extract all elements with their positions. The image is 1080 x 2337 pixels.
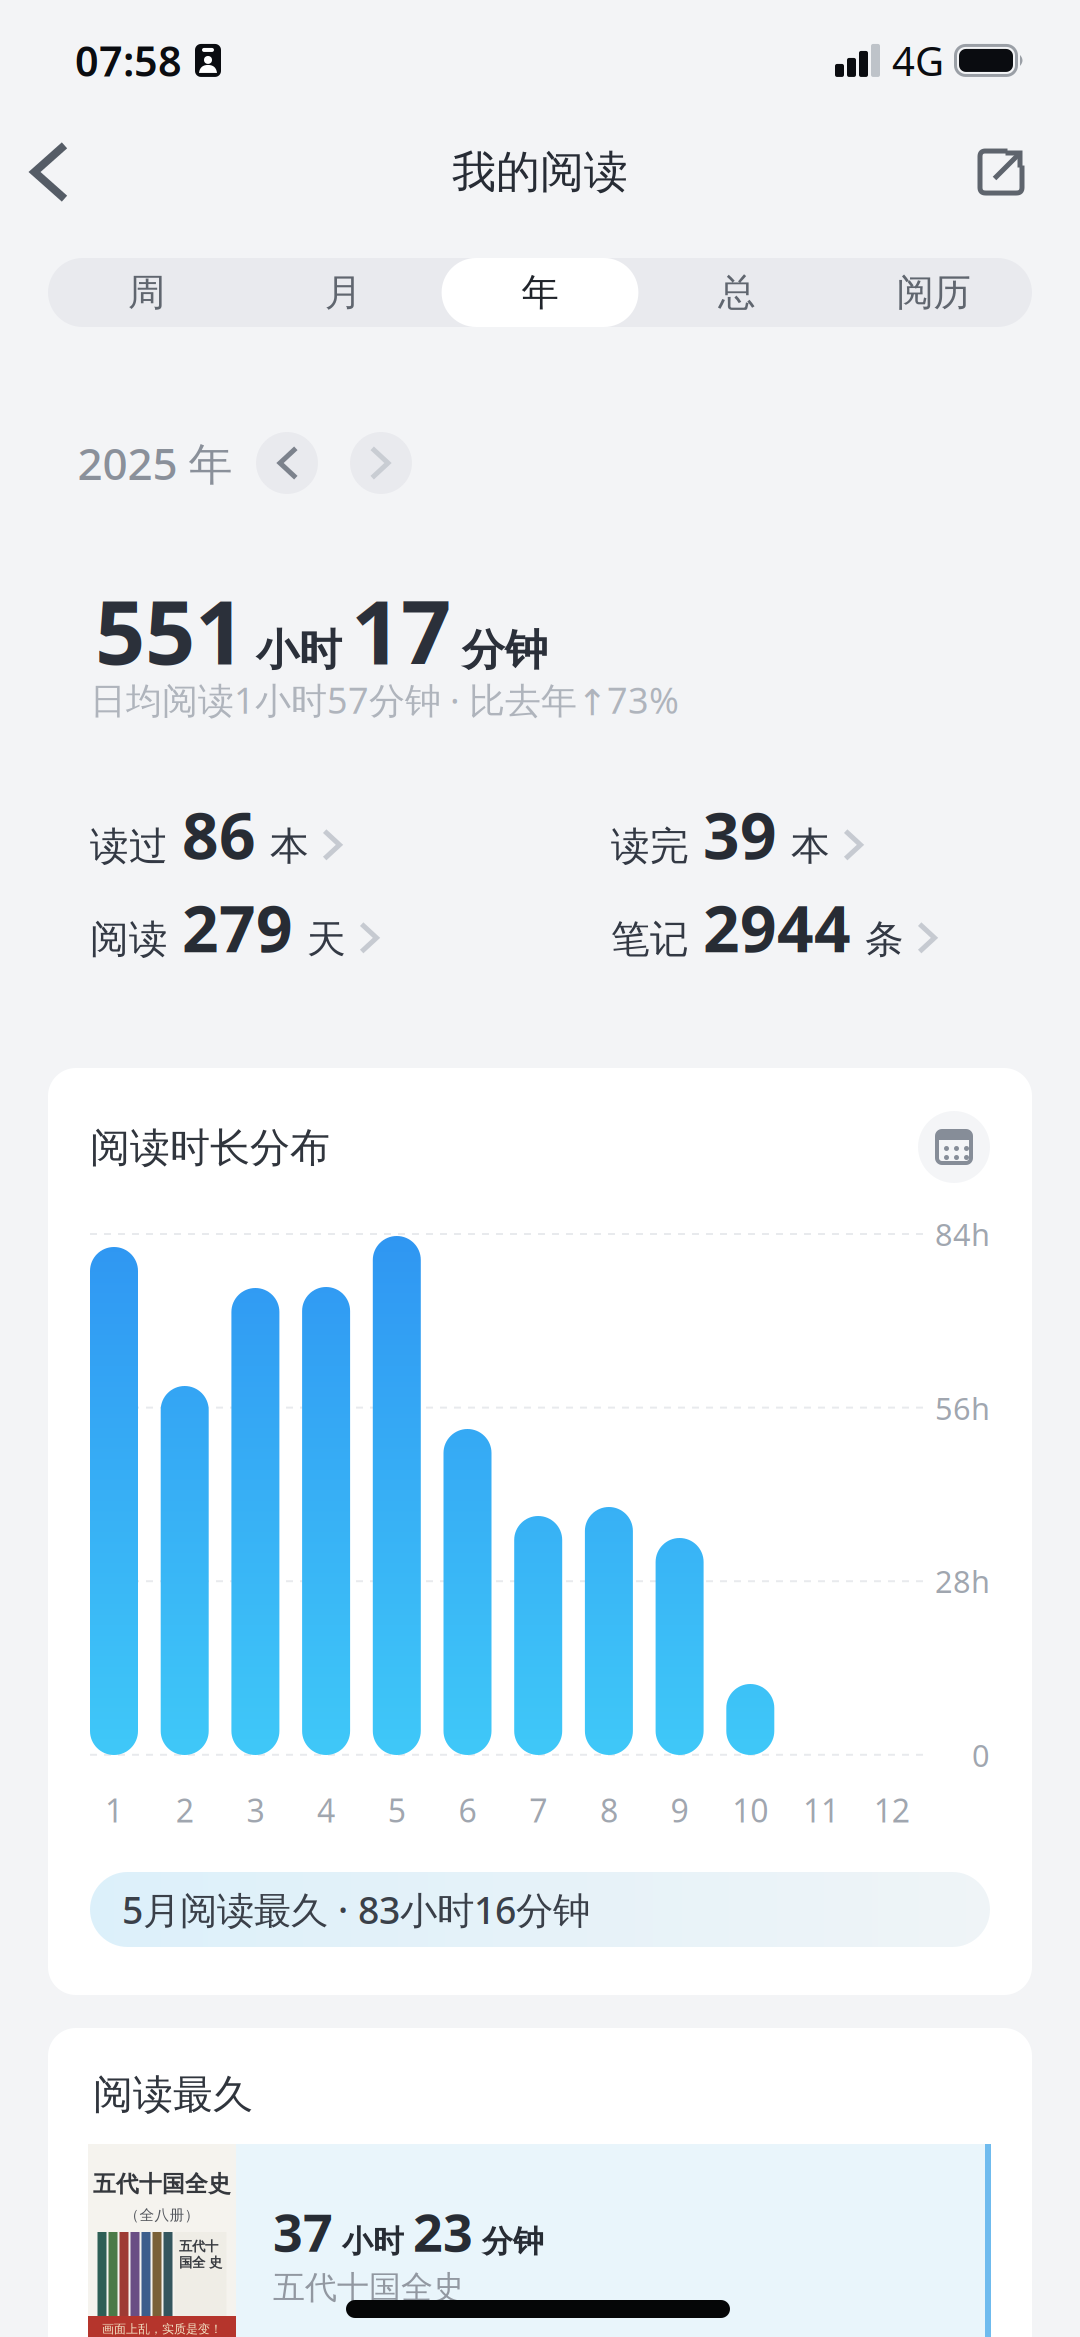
staticText: 条 <box>865 916 904 963</box>
staticText: 56h <box>935 1388 990 1428</box>
staticText: 23 <box>413 2197 473 2266</box>
staticText: 2025 年 <box>77 434 232 492</box>
button[interactable]: Next year <box>350 432 412 494</box>
staticText: 0 <box>972 1735 990 1775</box>
staticText: 1 <box>105 1789 123 1831</box>
staticText: 月 <box>325 270 362 315</box>
button[interactable]: 笔记 <box>611 885 937 970</box>
staticText: 86 <box>182 792 256 877</box>
staticText: 3 <box>246 1789 264 1831</box>
staticText: 84h <box>935 1214 990 1254</box>
staticText: 8 <box>600 1789 618 1831</box>
staticText: 4G <box>892 34 944 87</box>
staticText: 笔记 <box>611 916 689 963</box>
staticText: 本 <box>270 823 309 870</box>
staticText: 279 <box>182 885 293 970</box>
staticText: 28h <box>935 1561 990 1601</box>
staticText: 9 <box>671 1789 689 1831</box>
staticText: 阅历 <box>897 270 971 315</box>
button[interactable]: Share <box>959 130 1042 213</box>
staticText: 6 <box>458 1789 476 1831</box>
staticText: 读完 <box>611 823 689 870</box>
staticText: 本 <box>791 823 830 870</box>
button[interactable]: Previous year <box>256 432 318 494</box>
button[interactable]: Back <box>10 128 85 216</box>
staticText: 37 <box>273 2197 333 2266</box>
staticText: 阅读时长分布 <box>90 1123 330 1172</box>
staticText: 小时 <box>256 624 342 677</box>
staticText: 天 <box>307 916 346 963</box>
staticText: 阅读最久 <box>93 2070 253 2119</box>
staticText: 五代十国全史 <box>93 2170 231 2198</box>
staticText: 分钟 <box>482 2223 544 2260</box>
button[interactable]: 读完 <box>611 792 863 877</box>
staticText: 7 <box>529 1789 547 1831</box>
staticText: 周 <box>128 270 165 315</box>
button[interactable]: 总 <box>638 258 835 327</box>
staticText: 年 <box>521 270 558 315</box>
button[interactable]: 阅读 <box>90 885 379 970</box>
staticText: 小时 <box>342 2223 404 2260</box>
staticText: 39 <box>703 792 777 877</box>
staticText: 4 <box>317 1789 335 1831</box>
staticText: 07:58 <box>75 33 182 88</box>
button[interactable]: 年 <box>442 258 638 327</box>
staticText: （全八册） <box>124 2206 199 2224</box>
staticText: 读过 <box>90 823 168 870</box>
staticText: 日均阅读1小时57分钟 · 比去年↑73% <box>90 676 679 724</box>
staticText: 10 <box>732 1789 768 1831</box>
staticText: 2 <box>176 1789 194 1831</box>
staticText: 17 <box>351 572 451 689</box>
button[interactable]: 阅历 <box>835 258 1032 327</box>
staticText: 5月阅读最久 · 83小时16分钟 <box>122 1885 590 1934</box>
staticText: 11 <box>803 1789 839 1831</box>
button[interactable]: 周 <box>48 258 245 327</box>
button[interactable]: Calendar view <box>918 1111 990 1183</box>
staticText: 总 <box>718 270 755 315</box>
staticText: 12 <box>874 1789 910 1831</box>
button[interactable]: 37 <box>88 2144 991 2337</box>
staticText: 五代十国全史 <box>273 2268 465 2307</box>
staticText: 5 <box>388 1789 406 1831</box>
button[interactable]: 读过 <box>90 792 342 877</box>
staticText: 2944 <box>703 885 851 970</box>
button[interactable]: 月 <box>245 258 442 327</box>
staticText: 分钟 <box>462 624 548 677</box>
staticText: 551 <box>95 572 245 689</box>
staticText: 我的阅读 <box>452 145 628 199</box>
staticText: 画面上乱，实质是变！ <box>102 2322 222 2336</box>
staticText: 五代十国全 史 <box>179 2238 222 2271</box>
staticText: 阅读 <box>90 916 168 963</box>
